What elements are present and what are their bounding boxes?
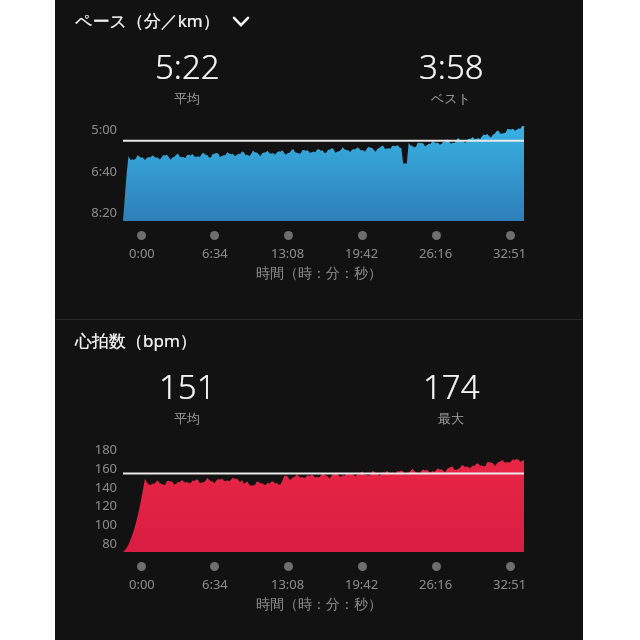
staticText: 心拍数（bpm）	[75, 329, 197, 352]
staticText: 13:08	[271, 575, 305, 593]
staticText: 26:16	[419, 575, 453, 593]
staticText: 5:22	[155, 44, 220, 89]
staticText: 6:34	[202, 244, 228, 262]
staticText: 6:40	[91, 162, 117, 180]
button[interactable]: 3:58	[319, 44, 583, 106]
other: Change metric	[230, 10, 252, 32]
button[interactable]: 174	[319, 364, 583, 426]
button[interactable]: ペース（分／km）	[55, 0, 583, 34]
staticText: 32:51	[493, 244, 527, 262]
staticText: 140	[94, 478, 117, 496]
staticText: 80	[102, 534, 117, 552]
button[interactable]: 151	[55, 364, 319, 426]
staticText: 時間（時：分：秒）	[256, 596, 382, 614]
staticText: ベスト	[431, 90, 471, 106]
staticText: 100	[94, 515, 117, 533]
staticText: 19:42	[345, 575, 379, 593]
staticText: 120	[94, 496, 117, 514]
staticText: 19:42	[345, 244, 379, 262]
staticText: 32:51	[493, 575, 527, 593]
button[interactable]: 心拍数（bpm）	[55, 320, 583, 354]
staticText: 5:00	[91, 120, 117, 138]
staticText: 6:34	[202, 575, 228, 593]
staticText: 3:58	[419, 44, 484, 89]
staticText: 最大	[438, 410, 464, 426]
staticText: 8:20	[91, 203, 117, 221]
staticText: 180	[94, 440, 117, 458]
staticText: 時間（時：分：秒）	[256, 265, 382, 283]
button[interactable]: 5:22	[55, 44, 319, 106]
staticText: 151	[159, 364, 216, 409]
staticText: 26:16	[419, 244, 453, 262]
staticText: 平均	[174, 410, 200, 426]
staticText: 0:00	[129, 575, 155, 593]
staticText: 0:00	[129, 244, 155, 262]
staticText: 174	[423, 364, 480, 409]
staticText: 平均	[174, 90, 200, 106]
staticText: ペース（分／km）	[75, 9, 220, 32]
staticText: 160	[94, 459, 117, 477]
staticText: 13:08	[271, 244, 305, 262]
